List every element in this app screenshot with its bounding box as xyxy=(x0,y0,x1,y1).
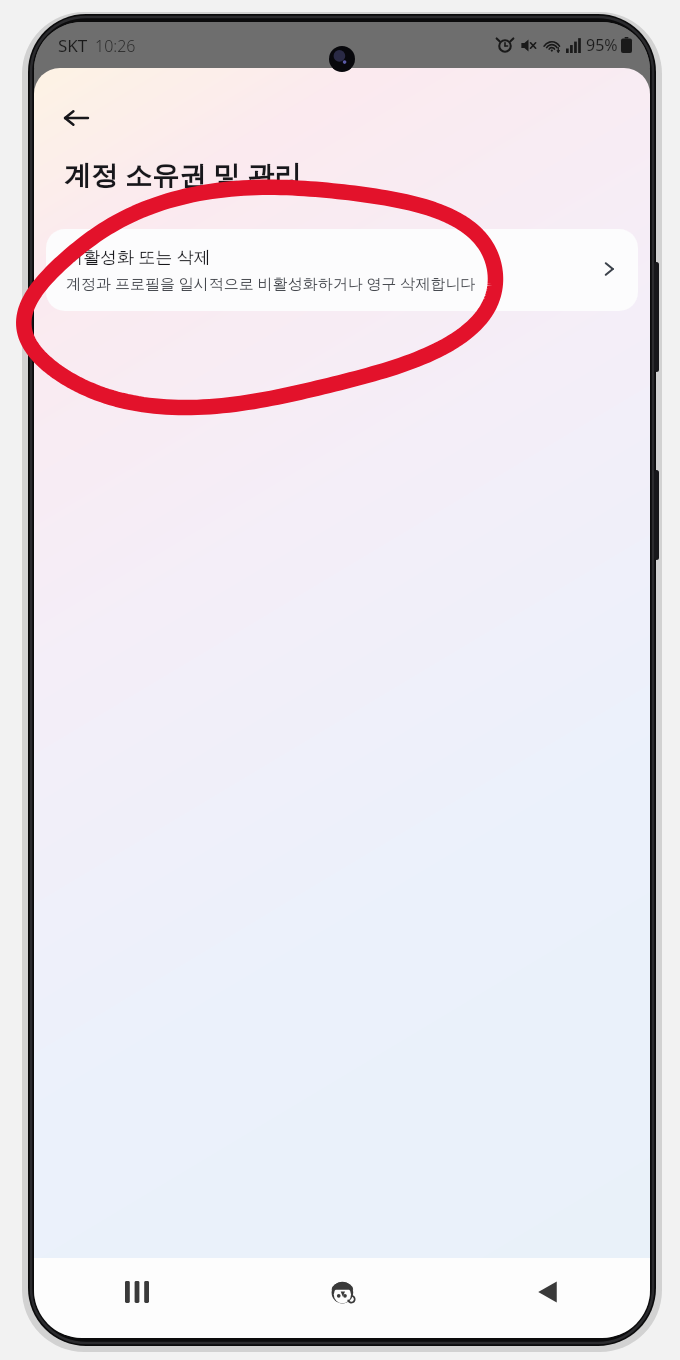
staticText: 95% xyxy=(586,34,618,56)
staticText: 10:26 xyxy=(95,35,136,57)
staticText: 계정 소유권 및 관리 xyxy=(64,156,302,193)
staticText: 계정과 프로필을 일시적으로 비활성화하거나 영구 삭제합니다 xyxy=(66,273,476,293)
button[interactable]: Home xyxy=(240,1258,445,1326)
button[interactable]: Recent apps xyxy=(34,1258,240,1326)
button[interactable]: Back xyxy=(445,1258,650,1326)
button[interactable]: Back xyxy=(52,94,100,142)
staticText: 비활성화 또는 삭제 xyxy=(66,245,211,268)
button[interactable]: 비활성화 또는 삭제 xyxy=(46,229,638,311)
staticText: SKT xyxy=(58,34,88,57)
